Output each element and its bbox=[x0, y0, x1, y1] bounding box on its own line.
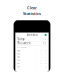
button[interactable]: Mon bbox=[15, 49, 49, 52]
button[interactable]: Sat bbox=[15, 65, 49, 68]
button[interactable]: Add bbox=[44, 34, 47, 36]
staticText: 24 bbox=[40, 53, 42, 55]
staticText: 7 bbox=[36, 53, 37, 55]
staticText: Statistics bbox=[26, 33, 37, 37]
staticText: Thu bbox=[17, 59, 20, 61]
staticText: 44 bbox=[45, 56, 47, 58]
button[interactable]: Thu bbox=[15, 59, 49, 62]
staticText: 86 bbox=[43, 41, 47, 45]
staticText: Clear bbox=[27, 5, 37, 10]
staticText: BY CATEGORY bbox=[17, 47, 27, 48]
button[interactable]: This week bbox=[15, 41, 49, 45]
staticText: Wed bbox=[17, 56, 20, 58]
staticText: Fri bbox=[17, 63, 19, 64]
staticText: 71 bbox=[45, 53, 47, 55]
staticText: This week bbox=[17, 41, 30, 45]
staticText: 9 bbox=[41, 66, 42, 68]
button[interactable]: Tue bbox=[15, 52, 49, 55]
staticText: Mon bbox=[17, 50, 20, 52]
staticText: 9 bbox=[36, 59, 37, 61]
staticText: Statistics bbox=[23, 11, 41, 16]
staticText: Sat bbox=[17, 66, 19, 68]
staticText: 3 bbox=[36, 66, 37, 68]
staticText: 39 bbox=[45, 66, 47, 68]
staticText: 2 bbox=[36, 56, 37, 58]
staticText: 4 bbox=[36, 50, 37, 52]
staticText: Today bbox=[17, 37, 24, 41]
button[interactable]: Wed bbox=[15, 55, 49, 59]
staticText: Tue bbox=[17, 53, 20, 55]
button[interactable]: Today bbox=[15, 37, 49, 41]
button[interactable]: Fri bbox=[15, 62, 49, 65]
staticText: 31 bbox=[40, 59, 42, 61]
staticText: 18 bbox=[40, 50, 42, 52]
staticText: 12 bbox=[43, 37, 47, 41]
staticText: 88 bbox=[45, 59, 47, 61]
